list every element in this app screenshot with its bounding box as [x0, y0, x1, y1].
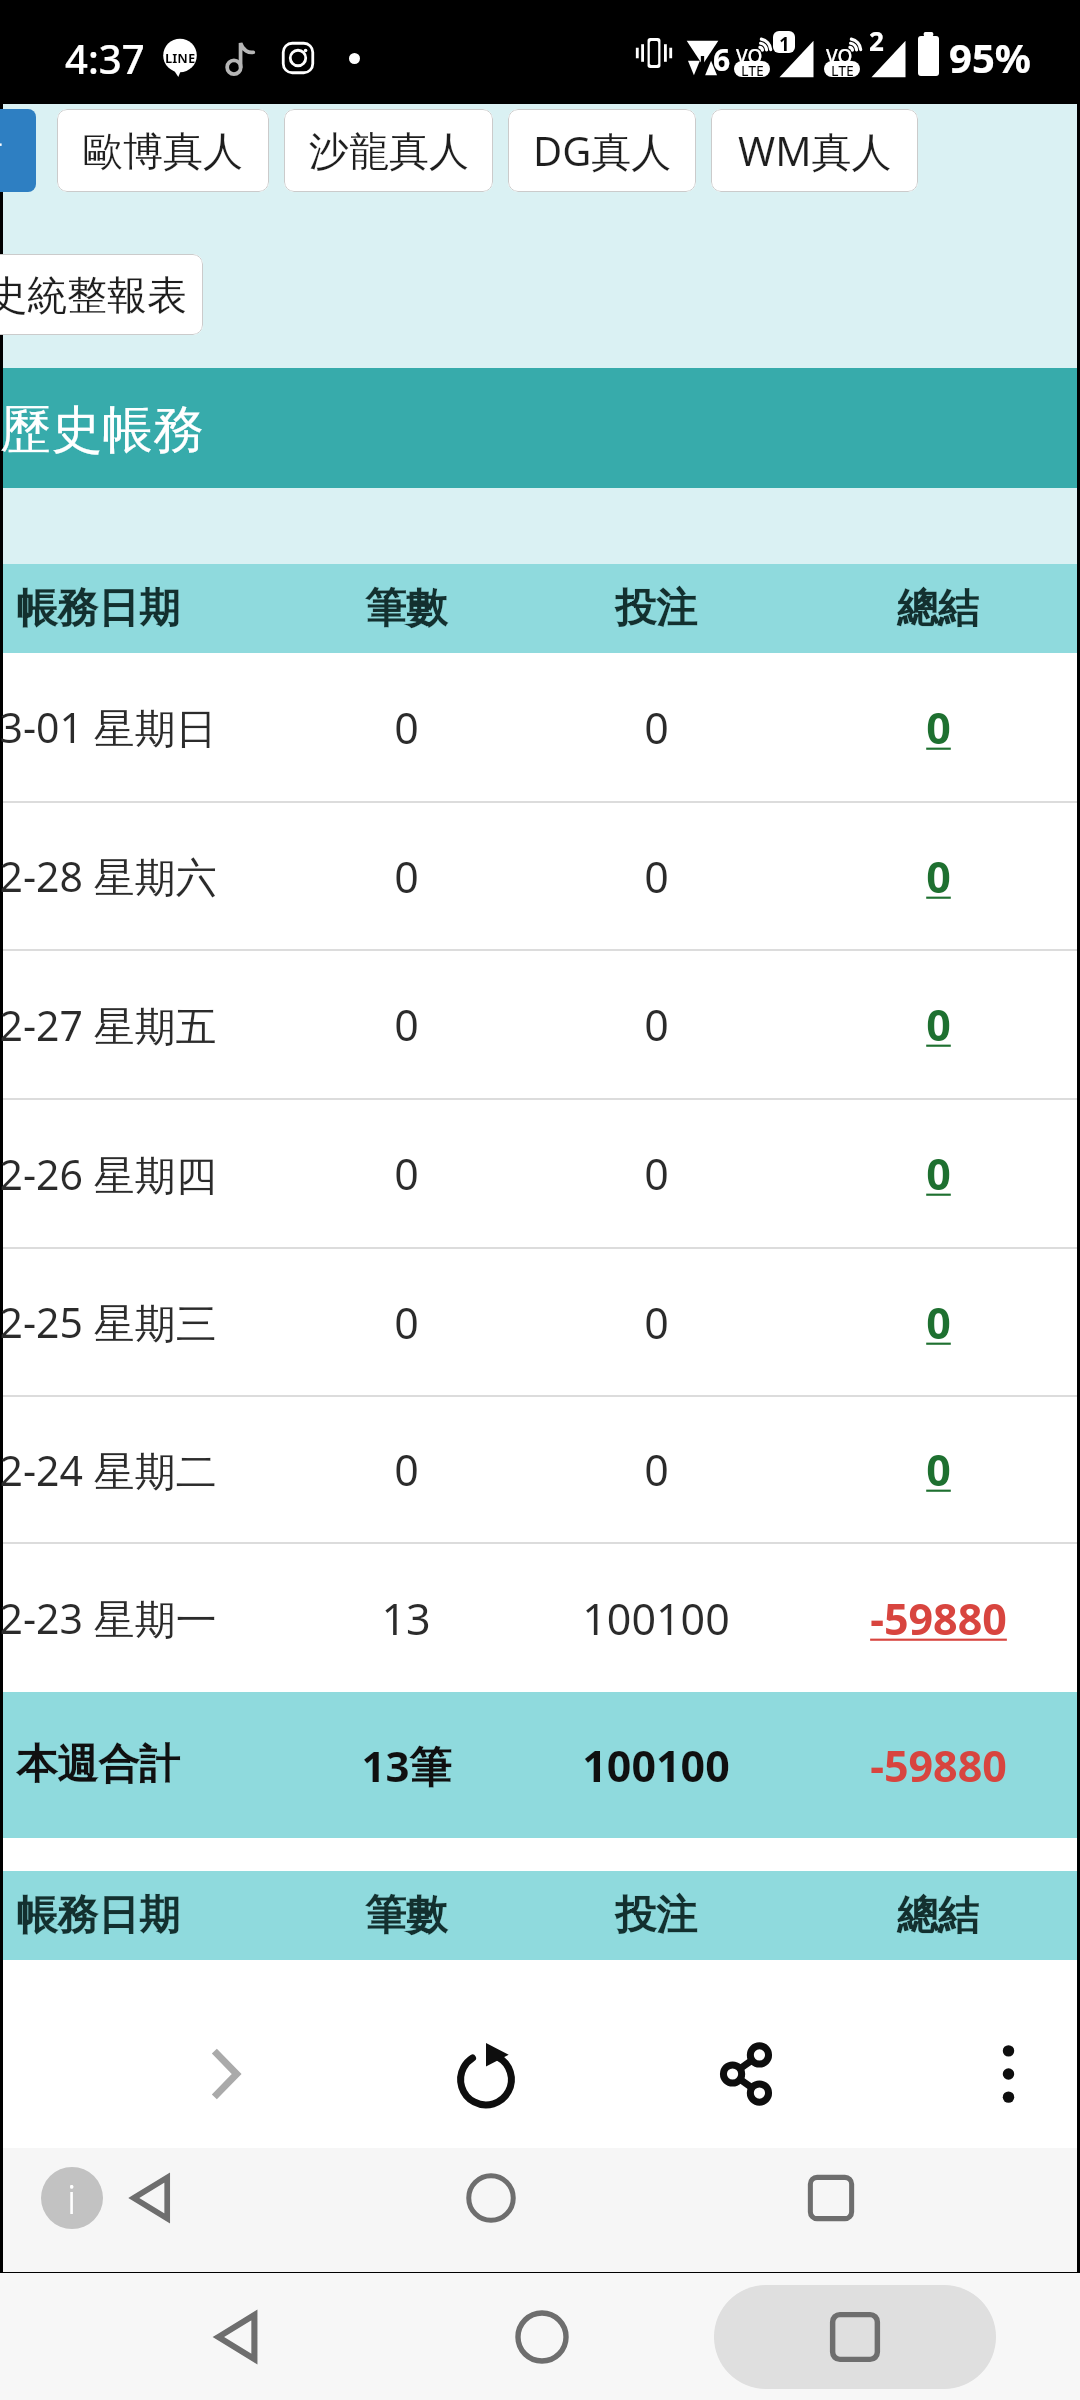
button[interactable]: Forward	[165, 2014, 285, 2134]
button[interactable]: Back	[193, 2293, 281, 2381]
staticText: 0	[644, 698, 669, 757]
staticText: 帳務日期	[16, 1890, 180, 1942]
staticText: VO	[736, 43, 763, 69]
staticText: 02-24 星期二	[0, 1442, 217, 1498]
staticText: LINE	[165, 49, 196, 67]
staticText: 沙龍真人	[309, 126, 469, 176]
button[interactable]: DG真人	[508, 109, 696, 192]
button[interactable]: Recents	[793, 2160, 869, 2236]
staticText: 13筆	[361, 1737, 452, 1794]
staticText: 13	[381, 1589, 431, 1648]
button[interactable]: 真人	[0, 109, 36, 192]
staticText: 95%	[949, 30, 1031, 84]
staticText: 0	[394, 847, 419, 906]
staticText: 0	[394, 1440, 419, 1499]
staticText: 0	[394, 1144, 419, 1203]
staticText: 0	[394, 1293, 419, 1352]
button[interactable]: WM真人	[711, 109, 918, 192]
staticText: i	[67, 2171, 77, 2225]
staticText: LTE	[831, 61, 854, 77]
staticText: 投注	[615, 583, 697, 635]
staticText: 筆數	[365, 583, 447, 635]
staticText: 0	[644, 1144, 669, 1203]
staticText: 真人	[0, 109, 36, 192]
staticText: 02-23 星期一	[0, 1590, 217, 1646]
staticText: 總結	[897, 1890, 979, 1942]
button[interactable]: 歐博真人	[57, 109, 269, 192]
staticText: 1	[779, 31, 790, 53]
staticText: 0	[644, 995, 669, 1054]
button[interactable]: Refresh	[426, 2014, 546, 2134]
staticText: 歐博真人	[83, 126, 243, 176]
button[interactable]: 歷史統整報表	[0, 254, 203, 335]
staticText: 帳務日期	[16, 583, 180, 635]
staticText: 歷史帳務	[0, 398, 204, 462]
staticText: 02-28 星期六	[0, 848, 217, 904]
staticText: 02-25 星期三	[0, 1294, 217, 1350]
button[interactable]: Back	[113, 2160, 189, 2236]
staticText: 100100	[582, 1736, 730, 1795]
staticText: 0	[394, 698, 419, 757]
staticText: 6	[713, 39, 731, 79]
staticText: 02-26 星期四	[0, 1146, 217, 1202]
staticText: 4:37	[65, 31, 145, 85]
button[interactable]: 0	[926, 1293, 951, 1352]
button[interactable]: 0	[926, 995, 951, 1054]
button[interactable]: 沙龍真人	[284, 109, 493, 192]
staticText: 02-27 星期五	[0, 997, 217, 1053]
button[interactable]: Share	[686, 2014, 806, 2134]
staticText: 本週合計	[16, 1739, 180, 1791]
staticText: 0	[644, 1440, 669, 1499]
staticText: 100100	[582, 1589, 730, 1648]
button[interactable]: 0	[926, 1440, 951, 1499]
staticText: 03-01 星期日	[0, 699, 217, 755]
button[interactable]: Info	[41, 2167, 103, 2229]
staticText: 2	[869, 23, 884, 58]
button[interactable]: 0	[926, 847, 951, 906]
staticText: 總結	[897, 583, 979, 635]
staticText: 筆數	[365, 1890, 447, 1942]
button[interactable]: -59880	[870, 1589, 1007, 1648]
staticText: DG真人	[533, 123, 672, 178]
button[interactable]: Home	[453, 2160, 529, 2236]
button[interactable]: More options	[948, 2014, 1068, 2134]
staticText: 0	[644, 1293, 669, 1352]
staticText: 0	[394, 995, 419, 1054]
button[interactable]: 0	[926, 1144, 951, 1203]
staticText: 歷史統整報表	[0, 270, 187, 320]
staticText: VO	[826, 43, 853, 69]
staticText: LTE	[741, 61, 764, 77]
staticText: -59880	[870, 1736, 1007, 1795]
staticText: 0	[644, 847, 669, 906]
staticText: WM真人	[738, 123, 892, 178]
button[interactable]: 0	[926, 698, 951, 757]
button[interactable]: Home	[498, 2293, 586, 2381]
button[interactable]: Recents	[714, 2285, 996, 2389]
staticText: 投注	[615, 1890, 697, 1942]
